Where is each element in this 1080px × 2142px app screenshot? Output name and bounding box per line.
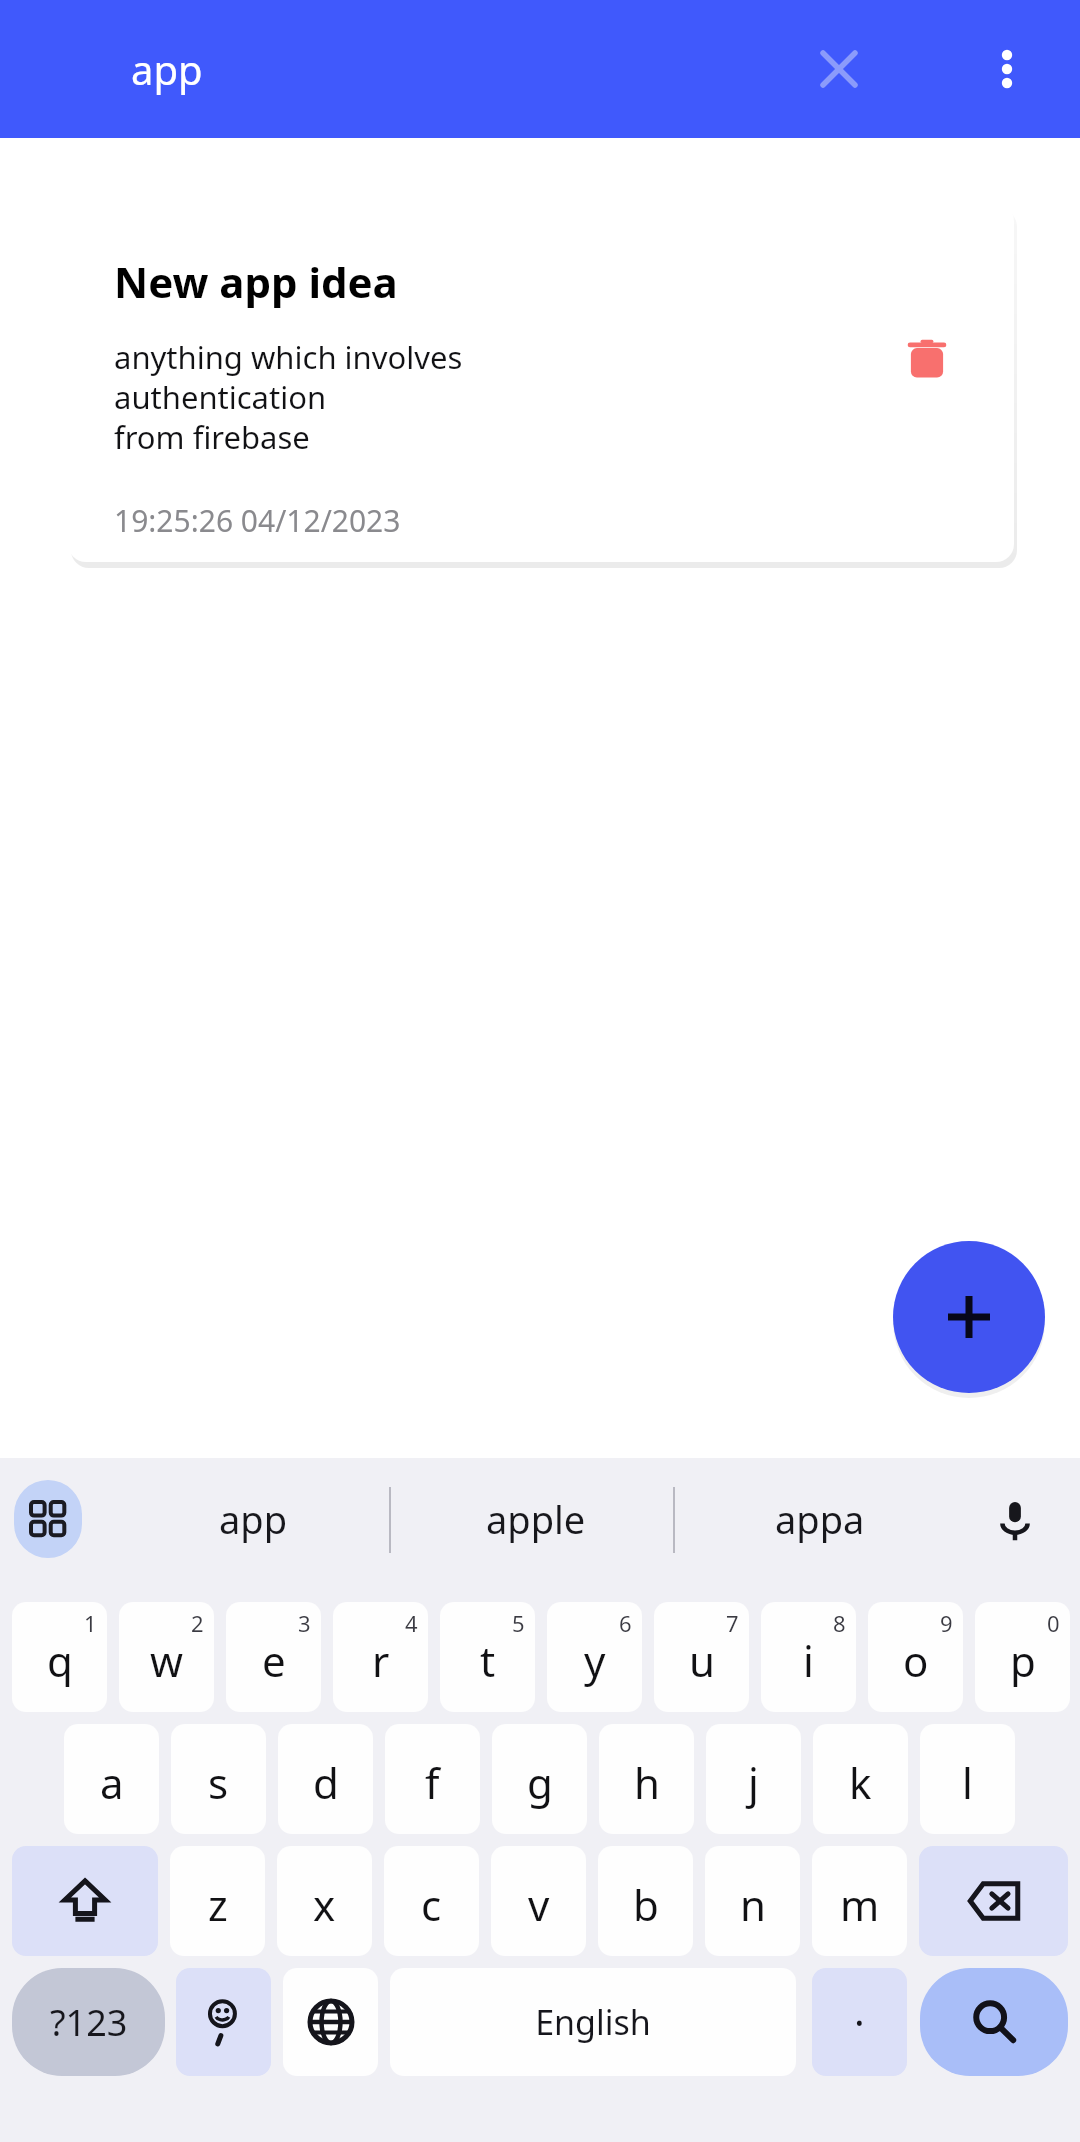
button[interactable]: Delete note [884, 318, 970, 404]
staticText: 2 [191, 1608, 204, 1638]
button[interactable]: . [812, 1968, 907, 2076]
button[interactable]: m [812, 1846, 907, 1956]
button[interactable]: y [547, 1602, 642, 1712]
staticText: l [962, 1754, 973, 1811]
staticText: apple [486, 1493, 586, 1545]
button[interactable]: l [920, 1724, 1015, 1834]
staticText: j [748, 1754, 759, 1811]
button[interactable]: z [170, 1846, 265, 1956]
staticText: appa [775, 1493, 865, 1545]
staticText: 5 [512, 1608, 525, 1638]
staticText: anything which involves authentication f… [114, 336, 674, 458]
button[interactable]: Toolbar [14, 1480, 82, 1558]
staticText: 0 [1047, 1608, 1060, 1638]
staticText: x [313, 1876, 336, 1933]
staticText: c [421, 1876, 442, 1933]
button[interactable]: a [64, 1724, 159, 1834]
button[interactable]: c [384, 1846, 479, 1956]
staticText: d [313, 1754, 339, 1811]
staticText: q [47, 1632, 73, 1689]
staticText: New app idea [114, 253, 398, 310]
button[interactable]: v [491, 1846, 586, 1956]
button[interactable]: w [119, 1602, 214, 1712]
button[interactable]: u [654, 1602, 749, 1712]
button[interactable]: e [226, 1602, 321, 1712]
staticText: . [854, 1983, 865, 2037]
staticText: t [480, 1632, 496, 1689]
button[interactable]: n [705, 1846, 800, 1956]
staticText: m [840, 1876, 880, 1933]
button[interactable]: r [333, 1602, 428, 1712]
button[interactable]: Emoji [176, 1968, 271, 2076]
staticText: a [100, 1754, 124, 1811]
staticText: app [131, 42, 203, 96]
button[interactable]: o [868, 1602, 963, 1712]
staticText: app [219, 1493, 288, 1545]
button[interactable]: apple [416, 1478, 656, 1560]
button[interactable]: Voice input [970, 1476, 1060, 1566]
button[interactable]: q [12, 1602, 107, 1712]
staticText: r [372, 1632, 390, 1689]
staticText: English [535, 1999, 651, 2045]
staticText: k [849, 1754, 872, 1811]
staticText: s [208, 1754, 229, 1811]
button[interactable]: Shift [12, 1846, 158, 1956]
button[interactable]: Add note [893, 1241, 1045, 1393]
staticText: 8 [833, 1608, 846, 1638]
button[interactable]: j [706, 1724, 801, 1834]
button[interactable]: Clear [784, 14, 894, 124]
button[interactable]: x [277, 1846, 372, 1956]
button[interactable]: app [133, 1478, 373, 1560]
staticText: w [150, 1632, 184, 1689]
button[interactable]: s [171, 1724, 266, 1834]
staticText: u [689, 1632, 715, 1689]
staticText: v [528, 1876, 550, 1933]
staticText: ?123 [50, 1998, 128, 2047]
button[interactable]: More options [952, 14, 1062, 124]
staticText: 3 [298, 1608, 311, 1638]
button[interactable]: h [599, 1724, 694, 1834]
staticText: 6 [619, 1608, 632, 1638]
staticText: h [634, 1754, 660, 1811]
staticText: f [425, 1754, 440, 1811]
button[interactable]: i [761, 1602, 856, 1712]
button[interactable]: Change language [283, 1968, 378, 2076]
button[interactable]: g [492, 1724, 587, 1834]
staticText: 9 [940, 1608, 953, 1638]
staticText: n [740, 1876, 766, 1933]
button[interactable]: f [385, 1724, 480, 1834]
button[interactable]: Backspace [919, 1846, 1068, 1956]
staticText: y [584, 1632, 606, 1689]
button[interactable]: ?123 [12, 1968, 165, 2076]
staticText: b [633, 1876, 659, 1933]
button[interactable]: t [440, 1602, 535, 1712]
button[interactable]: New app idea [68, 203, 1014, 562]
staticText: z [208, 1876, 228, 1933]
staticText: 7 [726, 1608, 739, 1638]
button[interactable]: Search [920, 1968, 1068, 2076]
staticText: 19:25:26 04/12/2023 [114, 500, 401, 541]
staticText: e [262, 1632, 286, 1689]
button[interactable]: English [390, 1968, 796, 2076]
staticText: o [903, 1632, 929, 1689]
button[interactable]: appa [700, 1478, 940, 1560]
staticText: 4 [405, 1608, 418, 1638]
staticText: 1 [84, 1608, 97, 1638]
button[interactable]: p [975, 1602, 1070, 1712]
button[interactable]: d [278, 1724, 373, 1834]
staticText: i [803, 1632, 814, 1689]
staticText: g [527, 1754, 553, 1811]
button[interactable]: k [813, 1724, 908, 1834]
staticText: p [1010, 1632, 1036, 1689]
button[interactable]: b [598, 1846, 693, 1956]
